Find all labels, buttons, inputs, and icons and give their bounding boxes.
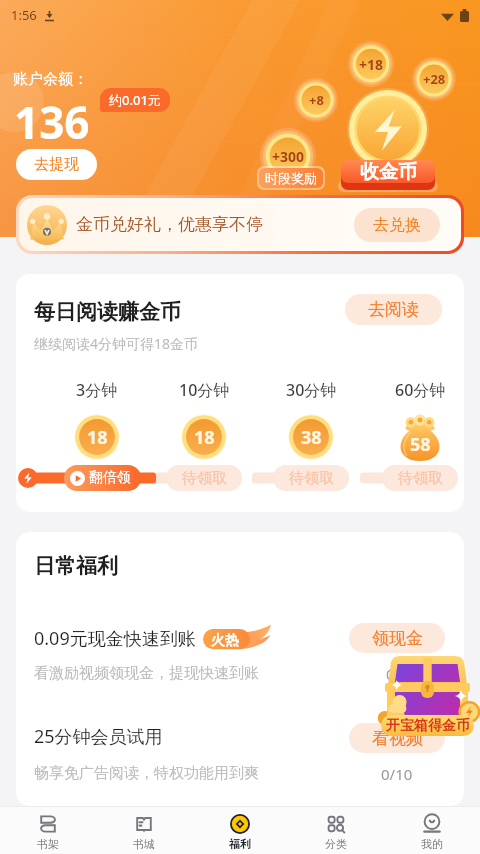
staticText: 领现金 [372, 628, 423, 649]
button[interactable]: 待领取 [382, 465, 458, 491]
button[interactable]: 去阅读 [345, 294, 442, 325]
staticText: 我的 [421, 837, 443, 851]
button[interactable]: 看视频 [349, 723, 445, 753]
staticText: 待领取 [289, 469, 334, 488]
button[interactable]: 分类 [288, 806, 384, 854]
button[interactable]: 开宝箱得金币 [381, 654, 474, 736]
staticText: 看视频 [372, 728, 423, 749]
staticText: 1:56 [11, 6, 37, 24]
button[interactable]: 待领取 [166, 465, 242, 491]
staticText: 开宝箱得金币 [386, 717, 470, 735]
staticText: 待领取 [398, 469, 443, 488]
staticText: 0.09元现金快速到账 [34, 626, 196, 651]
button[interactable]: 书架 [0, 806, 96, 854]
button[interactable]: 翻倍领 [64, 465, 141, 491]
staticText: 去提现 [34, 155, 79, 174]
staticText: 时段奖励 [265, 170, 317, 186]
staticText: 福利 [229, 837, 251, 851]
button[interactable]: 我的 [384, 806, 480, 854]
staticText: 约0.01元 [109, 91, 161, 109]
button[interactable]: 去提现 [16, 149, 97, 180]
staticText: 60分钟 [395, 379, 446, 401]
staticText: 0/5 [386, 664, 409, 684]
button[interactable]: 时段奖励 [259, 168, 323, 188]
staticText: 38 [301, 425, 322, 450]
staticText: 10分钟 [179, 379, 230, 401]
staticText: 书架 [37, 837, 59, 851]
staticText: 账户余额： [13, 70, 88, 89]
staticText: 25分钟会员试用 [34, 724, 163, 749]
staticText: 金币兑好礼，优惠享不停 [76, 214, 263, 235]
staticText: 3分钟 [76, 379, 118, 401]
staticText: 30分钟 [286, 379, 337, 401]
button[interactable]: 金币兑好礼，优惠享不停 [19, 198, 461, 251]
staticText: 畅享免广告阅读，特权功能用到爽 [34, 764, 259, 783]
staticText: 待领取 [182, 469, 227, 488]
staticText: 58 [410, 432, 431, 457]
button[interactable]: 领现金 [349, 623, 445, 653]
staticText: 0/10 [381, 764, 413, 784]
button[interactable]: 收金币 [341, 160, 435, 192]
staticText: +28 [423, 70, 446, 88]
staticText: 每日阅读赚金币 [34, 299, 181, 325]
staticText: 收金币 [360, 160, 417, 184]
button[interactable]: 福利 [192, 806, 288, 854]
staticText: 火热 [211, 632, 239, 650]
button[interactable]: 书城 [96, 806, 192, 854]
staticText: 日常福利 [34, 553, 118, 579]
staticText: +18 [359, 55, 384, 74]
staticText: 去阅读 [368, 299, 419, 320]
button[interactable]: 去兑换 [354, 208, 440, 242]
staticText: 分类 [325, 837, 347, 851]
staticText: 18 [87, 425, 108, 450]
staticText: 书城 [133, 837, 155, 851]
staticText: 翻倍领 [89, 469, 131, 487]
staticText: 136 [14, 92, 90, 152]
staticText: 看激励视频领现金，提现快速到账 [34, 664, 259, 683]
button[interactable]: 待领取 [273, 465, 349, 491]
staticText: 继续阅读4分钟可得18金币 [34, 334, 199, 353]
staticText: +8 [309, 91, 324, 109]
staticText: 去兑换 [373, 215, 421, 235]
staticText: +300 [272, 147, 305, 166]
staticText: 18 [194, 425, 215, 450]
